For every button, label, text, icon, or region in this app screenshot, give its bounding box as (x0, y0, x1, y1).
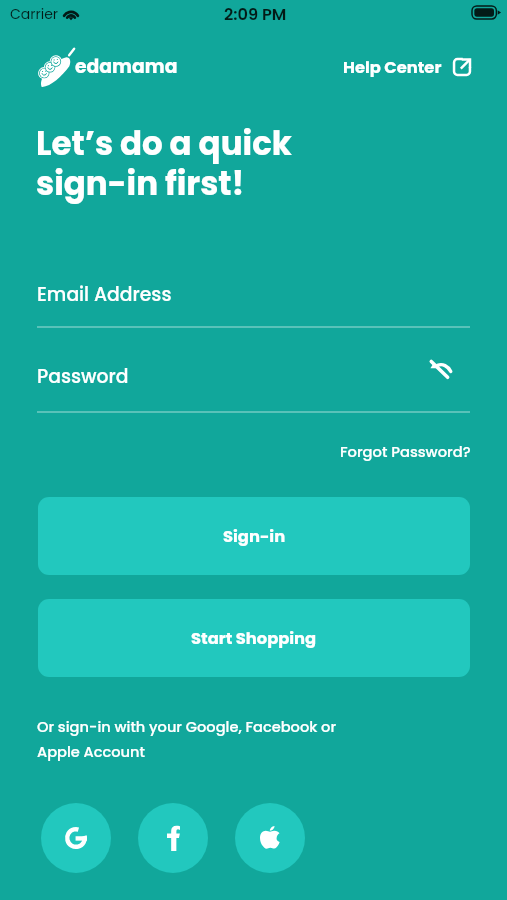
button[interactable]: Sign in with Apple (235, 803, 305, 873)
button[interactable]: Password (37, 352, 470, 397)
button[interactable]: Show password (416, 345, 465, 394)
button[interactable]: Sign-in (38, 497, 470, 575)
staticText: Sign-in (223, 525, 286, 548)
button[interactable]: Sign in with Google (41, 803, 111, 873)
staticText: Apple Account (37, 742, 145, 762)
staticText: Let’s do a quick (36, 121, 292, 167)
staticText: Email Address (37, 281, 172, 307)
button[interactable]: Help Center (343, 51, 474, 74)
button[interactable]: edamama home (30, 44, 133, 92)
button[interactable]: Start Shopping (38, 599, 470, 677)
staticText: Help Center (343, 56, 442, 79)
staticText: Forgot Password? (340, 442, 471, 463)
staticText: Carrier (10, 4, 59, 24)
staticText: Or sign-in with your Google, Facebook or (37, 717, 336, 737)
staticText: Password (37, 363, 129, 389)
button[interactable]: Email Address (37, 270, 470, 315)
staticText: sign-in first! (36, 161, 245, 207)
staticText: 2:09 PM (224, 3, 287, 26)
button[interactable]: Forgot Password? (340, 442, 471, 463)
button[interactable]: Sign in with Facebook (138, 803, 208, 873)
staticText: Start Shopping (191, 627, 317, 650)
staticText: edamama (75, 53, 178, 79)
